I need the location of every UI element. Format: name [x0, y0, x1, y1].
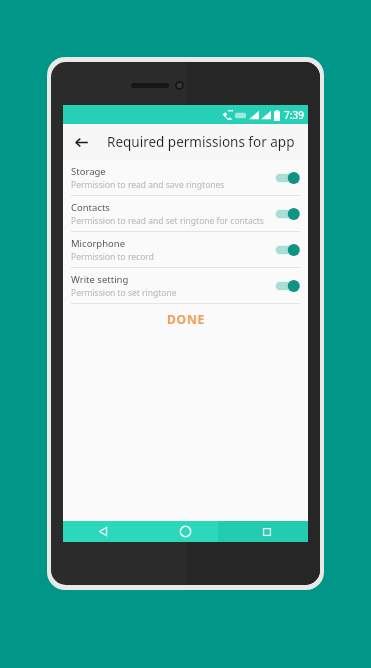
- staticText: Storage: [71, 165, 106, 178]
- button[interactable]: Toggle Write setting permission: [274, 276, 300, 296]
- button[interactable]: Home: [144, 521, 226, 542]
- staticText: Contacts: [71, 201, 110, 214]
- staticText: Permission to record: [71, 251, 154, 263]
- button[interactable]: Storage: [63, 160, 308, 195]
- staticText: Write setting: [71, 273, 129, 286]
- button[interactable]: Back: [63, 521, 144, 542]
- button[interactable]: Recent apps: [226, 521, 308, 542]
- button[interactable]: Micorphone: [63, 232, 308, 267]
- staticText: Required permissions for app: [107, 133, 295, 151]
- staticText: Permission to set ringtone: [71, 287, 177, 299]
- staticText: Permission to read and save ringtones: [71, 179, 225, 191]
- staticText: Permission to read and set ringtone for …: [71, 215, 264, 227]
- button[interactable]: Toggle Micorphone permission: [274, 240, 300, 260]
- staticText: Micorphone: [71, 237, 125, 250]
- button[interactable]: Toggle Storage permission: [274, 168, 300, 188]
- button[interactable]: Contacts: [63, 196, 308, 231]
- staticText: 7:39: [284, 108, 304, 122]
- button[interactable]: DONE: [63, 304, 308, 334]
- staticText: DONE: [167, 311, 205, 327]
- button[interactable]: Back: [63, 124, 99, 160]
- button[interactable]: Toggle Contacts permission: [274, 204, 300, 224]
- button[interactable]: Write setting: [63, 268, 308, 303]
